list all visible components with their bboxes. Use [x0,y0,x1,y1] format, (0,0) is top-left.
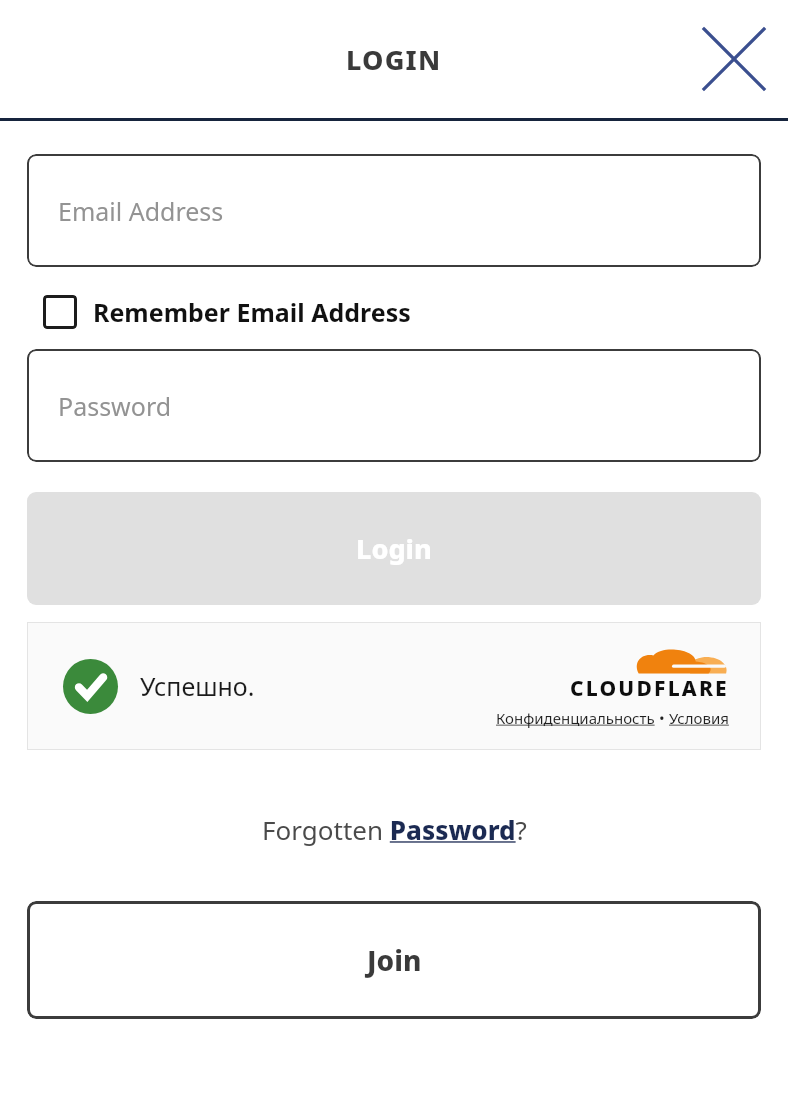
staticText: • [655,708,669,728]
button[interactable]: Email Address [27,154,761,267]
button[interactable]: Forgotten Password? [27,812,761,847]
button[interactable]: Remember Email Address [27,293,411,331]
staticText: Forgotten Password? [262,812,527,847]
button[interactable]: Password [27,349,761,462]
staticText: Login [356,530,432,567]
staticText: CLOUDFLARE [570,674,729,703]
staticText: Password [58,389,172,423]
staticText: Успешно. [140,669,255,703]
button[interactable]: Join [27,901,761,1019]
button[interactable]: Успешно. [27,622,761,750]
staticText: Join [367,941,422,979]
staticText: Email Address [58,194,224,228]
button[interactable]: Конфиденциальность [496,708,655,728]
button[interactable]: Close [696,21,772,97]
button[interactable]: Условия [669,708,729,728]
staticText: LOGIN [346,41,442,78]
staticText: Remember Email Address [93,295,411,329]
